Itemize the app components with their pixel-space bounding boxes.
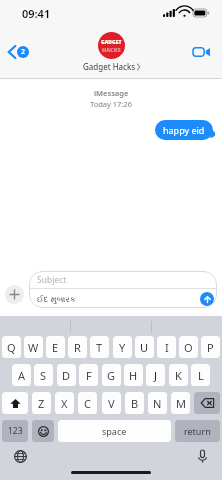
button[interactable]: Back, 2 unread xyxy=(3,37,34,67)
staticText: S xyxy=(40,368,47,383)
button[interactable]: 123 xyxy=(2,420,28,442)
staticText: O xyxy=(184,340,193,355)
button[interactable]: return xyxy=(175,420,220,442)
button[interactable]: Change keyboard xyxy=(10,446,30,466)
button[interactable]: Subject xyxy=(29,271,217,308)
button[interactable]: E xyxy=(46,336,65,358)
button[interactable]: K xyxy=(169,364,188,386)
button[interactable]: GADGET xyxy=(83,32,140,72)
staticText: Subject xyxy=(37,274,67,286)
button[interactable]: L xyxy=(191,364,210,386)
staticText: T xyxy=(96,340,103,355)
button[interactable]: Z xyxy=(32,392,51,414)
staticText: N xyxy=(153,396,162,411)
staticText: A xyxy=(18,368,26,383)
staticText: D xyxy=(62,368,71,383)
staticText: Q xyxy=(7,340,16,355)
staticText: 2 xyxy=(21,47,26,57)
staticText: Y xyxy=(119,340,126,355)
button[interactable]: O xyxy=(179,336,198,358)
button[interactable]: Q xyxy=(2,336,21,358)
staticText: P xyxy=(207,340,214,355)
staticText: Gadget Hacks xyxy=(83,61,135,72)
button[interactable]: P xyxy=(201,336,220,358)
button[interactable]: F xyxy=(79,364,98,386)
button[interactable]: N xyxy=(148,392,167,414)
staticText: HACKS xyxy=(102,46,121,53)
staticText: happy eid xyxy=(163,124,205,136)
button[interactable]: Shift xyxy=(2,392,28,414)
button[interactable]: D xyxy=(57,364,76,386)
staticText: B xyxy=(131,396,139,411)
button[interactable]: Send xyxy=(200,292,214,306)
button[interactable]: W xyxy=(24,336,43,358)
staticText: R xyxy=(74,340,81,355)
staticText: GADGET xyxy=(101,39,122,46)
staticText: L xyxy=(198,368,204,383)
staticText: M xyxy=(176,396,186,411)
staticText: G xyxy=(107,368,116,383)
button[interactable]: A xyxy=(12,364,31,386)
button[interactable]: V xyxy=(102,392,121,414)
button[interactable]: C xyxy=(78,392,97,414)
button[interactable]: R xyxy=(68,336,87,358)
staticText: iMessage xyxy=(94,88,129,98)
staticText: U xyxy=(140,340,149,355)
button[interactable]: FaceTime video call xyxy=(188,41,215,63)
button[interactable]: happy eid xyxy=(155,120,213,140)
staticText: X xyxy=(61,396,68,411)
staticText: V xyxy=(108,396,115,411)
staticText: H xyxy=(129,368,138,383)
button[interactable]: Backspace xyxy=(194,392,220,414)
button[interactable]: J xyxy=(146,364,165,386)
staticText: W xyxy=(28,340,39,355)
button[interactable]: U xyxy=(135,336,154,358)
button[interactable]: T xyxy=(90,336,109,358)
button[interactable]: B xyxy=(125,392,144,414)
staticText: ઈદ મુબારક xyxy=(37,293,200,305)
button[interactable]: Emoji xyxy=(32,420,54,442)
staticText: 09:41 xyxy=(22,6,51,21)
staticText: K xyxy=(175,368,182,383)
button[interactable]: Y xyxy=(113,336,132,358)
staticText: space xyxy=(102,425,127,437)
staticText: Z xyxy=(38,396,45,411)
button[interactable]: Add attachment xyxy=(5,285,24,304)
button[interactable]: Dictation xyxy=(192,446,212,466)
staticText: return xyxy=(184,425,211,437)
staticText: C xyxy=(84,396,91,411)
button[interactable]: S xyxy=(34,364,53,386)
staticText: Today 17:26 xyxy=(90,99,132,109)
staticText: J xyxy=(154,368,158,383)
staticText: F xyxy=(86,368,92,383)
staticText: 123 xyxy=(8,425,23,437)
button[interactable]: X xyxy=(55,392,74,414)
button[interactable]: space xyxy=(58,420,171,442)
staticText: I xyxy=(165,340,169,355)
staticText: E xyxy=(52,340,59,355)
button[interactable]: G xyxy=(102,364,121,386)
button[interactable]: I xyxy=(157,336,176,358)
button[interactable]: H xyxy=(124,364,143,386)
button[interactable]: M xyxy=(171,392,190,414)
